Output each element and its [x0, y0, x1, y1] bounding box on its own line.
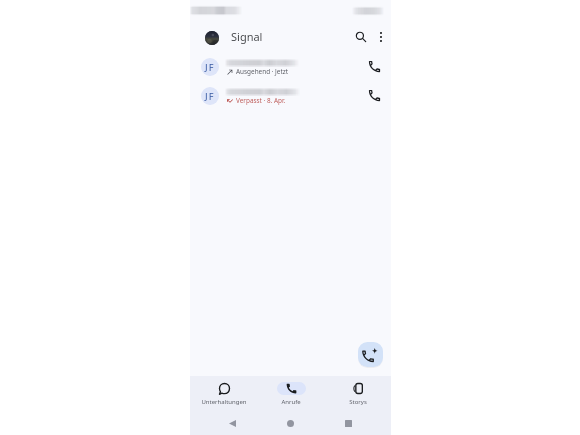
button[interactable]: Profil	[205, 31, 219, 45]
button[interactable]: Neuer Anruf	[358, 342, 383, 367]
button[interactable]: JF	[190, 81, 391, 111]
staticText: JF	[205, 90, 215, 103]
staticText: Verpasst · 8. Apr.	[236, 96, 286, 105]
staticText: Storys	[349, 398, 367, 406]
button[interactable]: Zurück	[226, 417, 239, 430]
staticText: JF	[205, 61, 215, 74]
button[interactable]: Mehr Optionen	[370, 26, 392, 48]
button[interactable]: JF	[190, 52, 391, 82]
button[interactable]: Startbildschirm	[284, 417, 297, 430]
button[interactable]: Suchen	[350, 26, 372, 48]
button[interactable]: Unterhaltungen	[191, 376, 257, 412]
staticText: Unterhaltungen	[201, 398, 247, 406]
staticText: Signal	[231, 29, 263, 44]
staticText: Ausgehend · Jetzt	[236, 67, 289, 76]
button[interactable]: Anrufen	[364, 85, 385, 106]
button[interactable]: Anrufe	[258, 376, 324, 412]
button[interactable]: Storys	[325, 376, 391, 412]
button[interactable]: Anrufen	[364, 56, 385, 77]
staticText: Anrufe	[281, 398, 301, 406]
button[interactable]: Übersicht	[342, 417, 355, 430]
